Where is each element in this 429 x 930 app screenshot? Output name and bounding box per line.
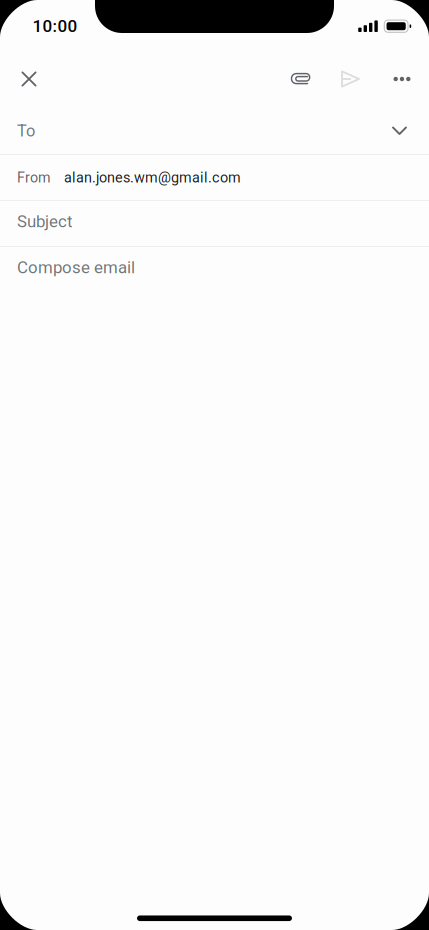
staticText: Subject xyxy=(17,212,72,231)
button[interactable]: From xyxy=(0,155,429,200)
staticText: alan.jones.wm@gmail.com xyxy=(64,169,241,186)
button[interactable]: Compose email xyxy=(0,247,429,291)
staticText: 10:00 xyxy=(32,16,77,36)
button[interactable]: Send xyxy=(326,50,375,108)
button[interactable]: Subject xyxy=(0,201,429,246)
staticText: Compose email xyxy=(17,258,135,277)
staticText: From xyxy=(17,169,51,186)
staticText: To xyxy=(17,121,35,141)
button[interactable]: More options xyxy=(375,50,429,108)
button[interactable]: Close xyxy=(0,50,58,108)
button[interactable]: Attach file xyxy=(278,50,326,108)
button[interactable]: To xyxy=(0,108,429,154)
